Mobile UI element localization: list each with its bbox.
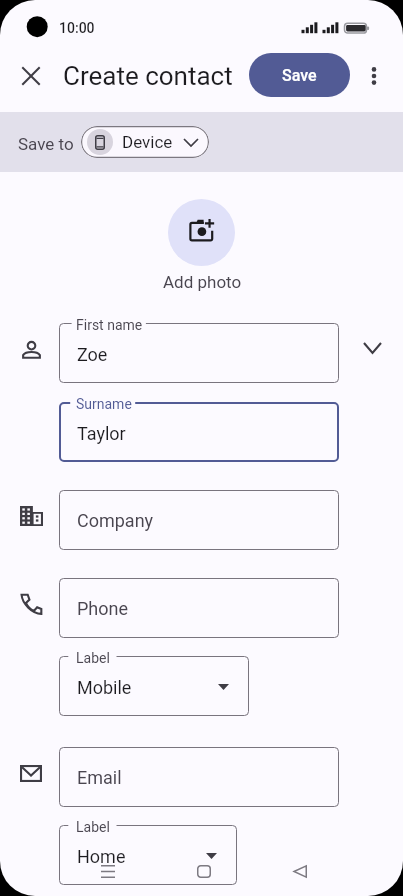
staticText: Taylor — [77, 423, 126, 444]
staticText: Company — [77, 510, 154, 531]
staticText: Zoe — [77, 344, 108, 365]
staticText: Create contact — [63, 61, 233, 91]
staticText: Mobile — [77, 677, 132, 698]
staticText: Device — [122, 132, 173, 152]
button[interactable]: Phone — [7, 580, 55, 628]
button[interactable]: Expand name fields — [348, 324, 396, 372]
button[interactable]: Label — [59, 825, 237, 885]
button[interactable]: Home — [183, 850, 225, 892]
button[interactable]: Back — [279, 850, 321, 892]
button[interactable]: Close — [7, 52, 55, 100]
staticText: Email — [77, 767, 122, 788]
button[interactable]: Label — [59, 656, 249, 716]
button[interactable]: Device — [81, 126, 209, 158]
staticText: Add photo — [163, 272, 242, 292]
staticText: Home — [77, 846, 126, 867]
staticText: Label — [76, 650, 110, 666]
staticText: Label — [76, 819, 110, 835]
staticText: Save to — [18, 134, 74, 154]
button[interactable]: Phone — [59, 578, 339, 638]
staticText: First name — [76, 317, 143, 333]
button[interactable]: First name — [59, 323, 339, 383]
button[interactable]: More options — [350, 52, 398, 100]
button[interactable]: Name — [7, 326, 55, 374]
button[interactable]: Save — [249, 53, 350, 97]
button[interactable]: Recents — [87, 850, 129, 892]
staticText: 10:00 — [59, 20, 95, 36]
button[interactable]: Email — [59, 747, 339, 807]
button[interactable]: Company — [59, 490, 339, 550]
button[interactable]: Company — [7, 492, 55, 540]
staticText: Surname — [76, 396, 132, 412]
button[interactable]: Email — [7, 749, 55, 797]
button[interactable]: Add photo — [168, 199, 235, 266]
staticText: Save — [282, 66, 317, 85]
button[interactable]: Surname — [59, 402, 339, 462]
staticText: Phone — [77, 598, 129, 619]
